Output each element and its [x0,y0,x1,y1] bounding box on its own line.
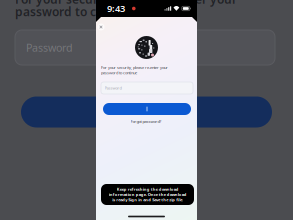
button[interactable]: Forgot password? [121,118,171,125]
staticText: 9:43 [107,2,125,15]
button[interactable] [103,103,191,115]
button[interactable]: Close [95,21,106,32]
staticText: Keep refreshing the download information… [108,186,186,202]
staticText: password to continue [15,3,142,19]
staticText: Forgot password? [130,119,161,124]
staticText: Password [26,40,73,55]
staticText: For your security, please re-enter your [15,0,237,7]
staticText: Password [104,85,121,91]
staticText: For your security, please re-enter your … [101,65,168,75]
